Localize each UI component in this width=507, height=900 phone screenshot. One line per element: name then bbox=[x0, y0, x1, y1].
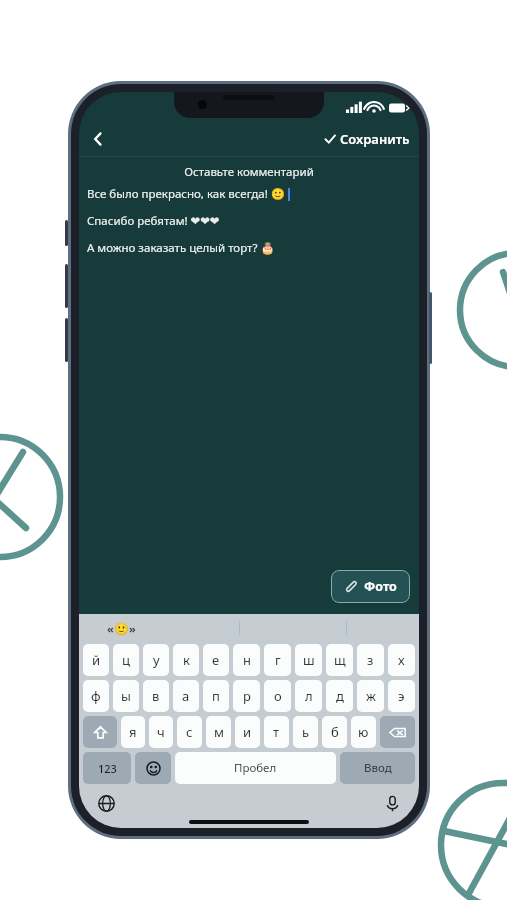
staticText: л bbox=[305, 687, 313, 705]
staticText: х bbox=[398, 651, 405, 669]
button[interactable]: р bbox=[233, 680, 260, 712]
button[interactable]: ж bbox=[357, 680, 384, 712]
staticText: щ bbox=[334, 651, 346, 669]
staticText: з bbox=[367, 651, 374, 669]
button[interactable]: Back bbox=[83, 124, 113, 154]
button[interactable]: е bbox=[203, 644, 229, 676]
button[interactable]: д bbox=[326, 680, 353, 712]
button[interactable]: у bbox=[143, 644, 169, 676]
staticText: п bbox=[212, 687, 220, 705]
button[interactable]: Change language bbox=[93, 790, 119, 816]
button[interactable]: 123 bbox=[83, 752, 131, 784]
staticText: й bbox=[92, 651, 101, 669]
staticText: ы bbox=[121, 687, 131, 705]
button[interactable]: ы bbox=[113, 680, 139, 712]
staticText: ж bbox=[366, 687, 376, 705]
button[interactable]: я bbox=[121, 716, 145, 748]
staticText: Ввод bbox=[364, 760, 392, 776]
staticText: с bbox=[186, 723, 193, 741]
staticText: 123 bbox=[98, 761, 117, 776]
button[interactable]: м bbox=[206, 716, 231, 748]
button[interactable]: ф bbox=[83, 680, 109, 712]
staticText: д bbox=[336, 687, 344, 705]
button[interactable]: Emoji bbox=[135, 752, 171, 784]
button[interactable]: ь bbox=[293, 716, 318, 748]
button[interactable]: Shift bbox=[83, 716, 117, 748]
staticText: ь bbox=[302, 723, 310, 741]
button[interactable]: т bbox=[264, 716, 289, 748]
button[interactable]: Voice input bbox=[379, 790, 405, 816]
staticText: » bbox=[129, 621, 136, 636]
staticText: Пробел bbox=[234, 760, 277, 776]
staticText: Спасибо ребятам! ❤❤❤ bbox=[87, 213, 220, 229]
staticText: А можно заказать целый торт? 🎂 bbox=[87, 240, 275, 256]
button[interactable]: и bbox=[235, 716, 260, 748]
button[interactable]: л bbox=[295, 680, 322, 712]
staticText: а bbox=[182, 687, 190, 705]
staticText: и bbox=[243, 723, 252, 741]
button[interactable]: Фото bbox=[331, 570, 410, 603]
button[interactable]: Ввод bbox=[340, 752, 415, 784]
button[interactable]: ц bbox=[113, 644, 139, 676]
staticText: Сохранить bbox=[340, 130, 410, 148]
staticText: т bbox=[273, 723, 280, 741]
staticText: о bbox=[274, 687, 282, 705]
button[interactable]: г bbox=[264, 644, 291, 676]
staticText: м bbox=[214, 723, 224, 741]
staticText: ч bbox=[157, 723, 165, 741]
staticText: я bbox=[129, 723, 137, 741]
button[interactable]: а bbox=[173, 680, 199, 712]
staticText: е bbox=[212, 651, 220, 669]
button[interactable]: к bbox=[173, 644, 199, 676]
button[interactable]: з bbox=[357, 644, 384, 676]
button[interactable]: Пробел bbox=[175, 752, 336, 784]
button[interactable]: й bbox=[83, 644, 109, 676]
staticText: ф bbox=[91, 687, 101, 705]
button[interactable]: ч bbox=[149, 716, 173, 748]
staticText: н bbox=[243, 651, 251, 669]
staticText: 🙂 bbox=[114, 622, 129, 636]
staticText: Все было прекрасно, как всегда! 🙂 bbox=[87, 186, 286, 202]
button[interactable]: Backspace bbox=[380, 716, 415, 748]
staticText: Оставьте комментарий bbox=[79, 164, 419, 180]
staticText: ц bbox=[122, 651, 130, 669]
staticText: « bbox=[107, 621, 114, 636]
button[interactable]: « bbox=[107, 621, 136, 636]
button[interactable]: Сохранить bbox=[324, 130, 410, 148]
button[interactable]: н bbox=[233, 644, 260, 676]
staticText: Фото bbox=[364, 578, 397, 595]
staticText: б bbox=[331, 723, 339, 741]
button[interactable]: х bbox=[388, 644, 415, 676]
staticText: у bbox=[153, 651, 160, 669]
staticText: р bbox=[243, 687, 251, 705]
button[interactable]: э bbox=[388, 680, 415, 712]
button[interactable]: ш bbox=[295, 644, 322, 676]
button[interactable]: б bbox=[322, 716, 347, 748]
button[interactable]: щ bbox=[326, 644, 353, 676]
button[interactable]: в bbox=[143, 680, 169, 712]
button[interactable]: п bbox=[203, 680, 229, 712]
staticText: г bbox=[275, 651, 281, 669]
staticText: в bbox=[152, 687, 160, 705]
button[interactable]: с bbox=[177, 716, 202, 748]
staticText: ю bbox=[358, 723, 369, 741]
staticText: к bbox=[183, 651, 190, 669]
button[interactable]: о bbox=[264, 680, 291, 712]
staticText: э bbox=[398, 687, 405, 705]
button[interactable]: ю bbox=[351, 716, 376, 748]
staticText: ш bbox=[303, 651, 315, 669]
